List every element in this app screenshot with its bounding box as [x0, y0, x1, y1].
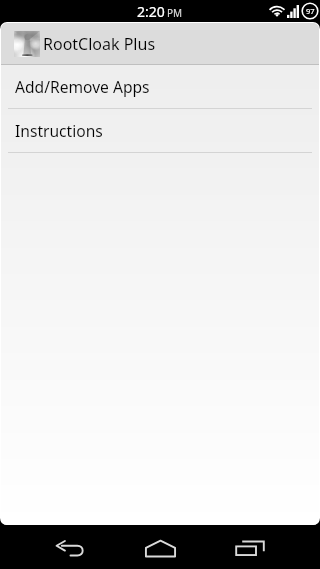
button[interactable]: Instructions [1, 109, 319, 152]
staticText: PM [167, 6, 183, 20]
staticText: 97 [306, 6, 315, 16]
button[interactable]: Add/Remove Apps [1, 65, 319, 108]
button[interactable]: Back [36, 526, 104, 569]
staticText: 2:20 [137, 2, 165, 21]
button[interactable]: RootCloak Plus [1, 23, 319, 64]
button[interactable]: Home [126, 526, 194, 569]
staticText: Add/Remove Apps [15, 76, 150, 97]
staticText: RootCloak Plus [43, 33, 156, 55]
button[interactable]: Recent apps [216, 526, 284, 569]
staticText: Instructions [15, 120, 103, 141]
